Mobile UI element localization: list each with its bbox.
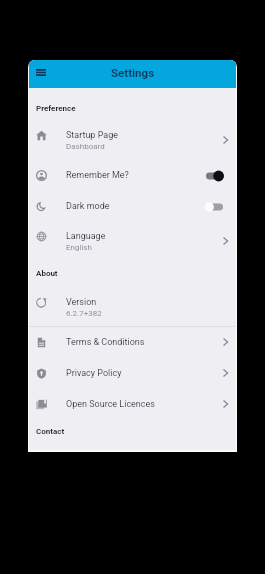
button[interactable]: Startup Page <box>217 132 233 148</box>
button[interactable]: Language <box>29 221 236 260</box>
staticText: Dark mode <box>66 201 110 212</box>
staticText: Preference <box>36 104 76 113</box>
button[interactable]: Toggle on <box>204 168 227 184</box>
staticText: Language <box>66 231 106 242</box>
staticText: Open Source Licences <box>66 399 155 410</box>
staticText: Dashboard <box>66 142 105 151</box>
staticText: Startup Page <box>66 130 118 141</box>
button[interactable]: Privacy Policy <box>29 357 236 388</box>
staticText: 6.2.7+382 <box>66 309 102 318</box>
button[interactable]: Open navigation drawer <box>31 64 51 84</box>
button[interactable]: Open Source Licences <box>217 396 233 412</box>
button[interactable]: Dark mode <box>29 190 236 221</box>
staticText: Privacy Policy <box>66 368 122 379</box>
button[interactable]: Open Source Licences <box>29 388 236 419</box>
staticText: Version <box>66 297 97 308</box>
staticText: Contact <box>36 427 65 436</box>
staticText: Terms & Conditions <box>66 337 145 348</box>
staticText: Remember Me? <box>66 170 129 181</box>
staticText: Settings <box>111 66 155 79</box>
button[interactable]: Version <box>29 287 236 326</box>
button[interactable]: Privacy Policy <box>217 365 233 381</box>
staticText: About <box>36 269 58 278</box>
button[interactable]: Startup Page <box>29 120 236 159</box>
button[interactable]: Language <box>217 233 233 249</box>
button[interactable]: Terms & Conditions <box>29 326 236 357</box>
button[interactable]: Terms & Conditions <box>217 334 233 350</box>
staticText: English <box>66 243 92 252</box>
button[interactable]: Remember Me? <box>29 159 236 190</box>
button[interactable]: Toggle off <box>204 199 227 215</box>
